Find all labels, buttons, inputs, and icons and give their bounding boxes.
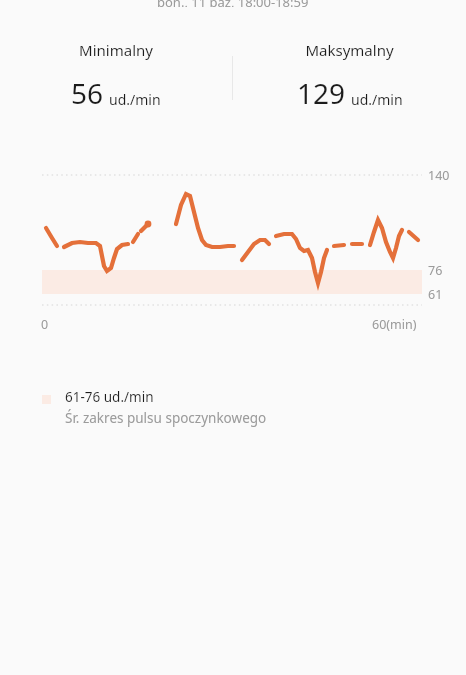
staticText: 0 (41, 316, 49, 333)
staticText: 61-76 ud./min (65, 388, 154, 406)
staticText: Śr. zakres pulsu spoczynkowego (65, 409, 267, 427)
staticText: 60(min) (372, 316, 417, 333)
staticText: 129 (297, 74, 346, 112)
button[interactable]: 61-76 ud./min (42, 388, 275, 431)
staticText: Maksymalny (305, 40, 394, 60)
staticText: 61 (428, 286, 443, 303)
staticText: ud./min (109, 90, 161, 109)
staticText: 140 (428, 167, 450, 184)
staticText: 76 (428, 262, 443, 279)
staticText: Minimalny (79, 40, 153, 60)
button[interactable]: Minimalny (0, 40, 232, 112)
button[interactable]: Maksymalny (233, 40, 466, 112)
staticText: 56 (71, 74, 104, 112)
button[interactable] (0, 160, 466, 335)
staticText: ud./min (351, 90, 403, 109)
staticText: pon., 11 paź, 18:00-18:59 (157, 0, 309, 7)
